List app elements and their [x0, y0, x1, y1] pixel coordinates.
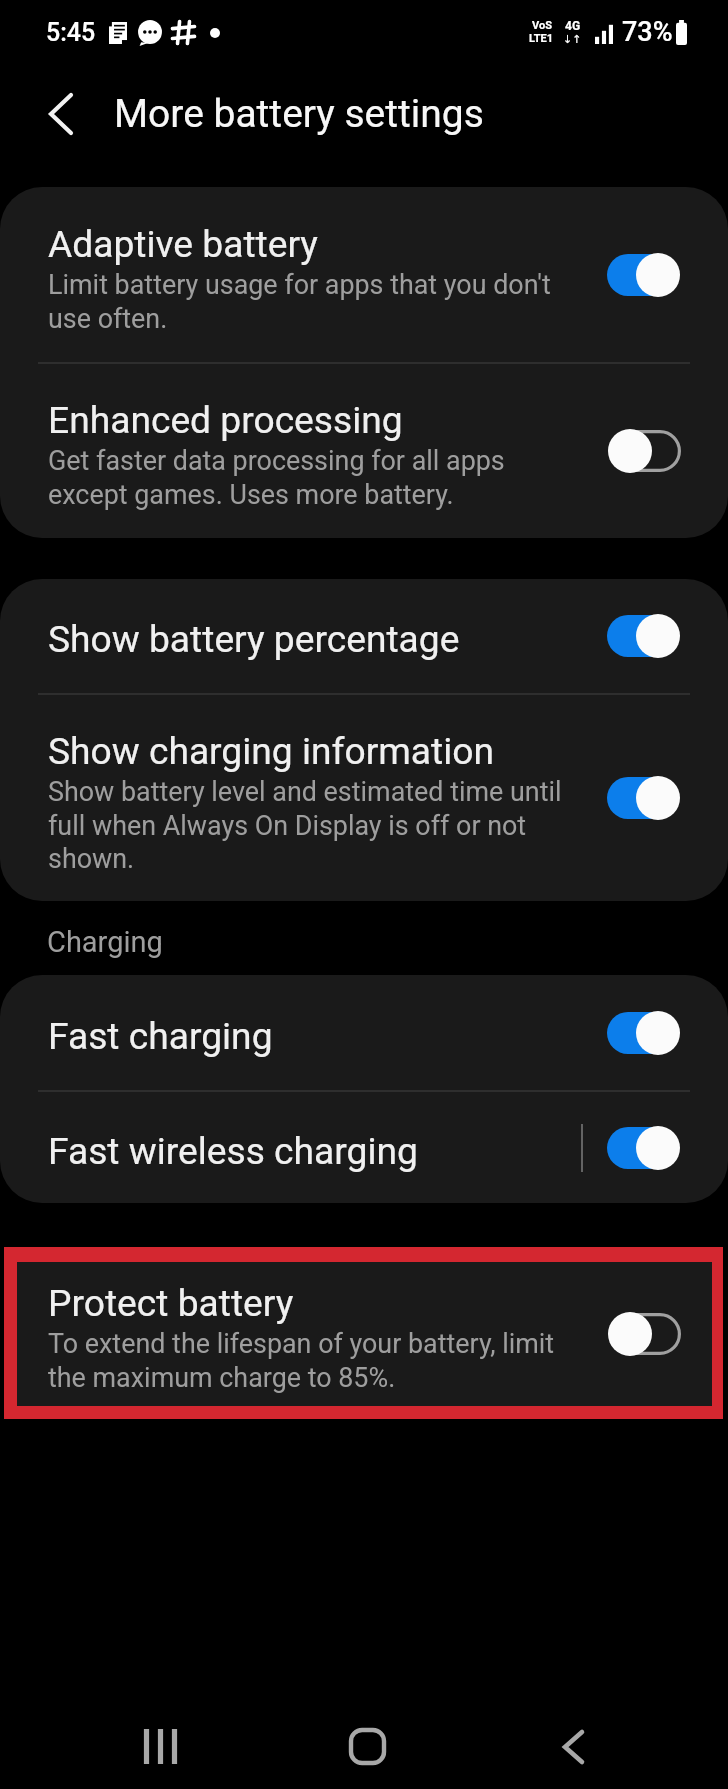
button[interactable]: Recent apps [100, 1704, 220, 1789]
button[interactable]: Protect battery [17, 1262, 712, 1406]
staticText: Limit battery usage for apps that you do… [48, 269, 551, 334]
other: Enhanced processing [607, 429, 681, 473]
button[interactable]: Adaptive battery [0, 187, 728, 362]
staticText: More battery settings [114, 91, 484, 137]
staticText: Adaptive battery [48, 222, 318, 266]
staticText: Enhanced processing [48, 398, 403, 442]
other: Fast wireless charging [607, 1126, 681, 1170]
staticText: 4G [565, 19, 581, 33]
button[interactable]: Fast wireless charging [0, 1092, 728, 1203]
staticText: Get faster data processing for all apps … [48, 445, 505, 510]
other: Adaptive battery [607, 253, 681, 297]
staticText: Charging [47, 925, 163, 959]
staticText: 73% [622, 16, 673, 48]
other: Show battery percentage [607, 614, 681, 658]
staticText: Show battery percentage [48, 617, 460, 661]
other: Show charging information [607, 776, 681, 820]
button[interactable]: Back [513, 1704, 633, 1789]
button[interactable]: Show charging information [0, 695, 728, 901]
button[interactable]: Fast charging [0, 975, 728, 1090]
button[interactable]: Back [21, 74, 101, 154]
button[interactable]: Enhanced processing [0, 364, 728, 538]
other: Protect battery [607, 1312, 681, 1356]
other: Fast charging [607, 1011, 681, 1055]
staticText: LTE1 [529, 32, 554, 45]
staticText: VoS [532, 19, 552, 32]
staticText: Fast wireless charging [48, 1129, 418, 1173]
button[interactable]: Show battery percentage [0, 579, 728, 693]
staticText: 5:45 [46, 18, 96, 47]
button[interactable]: Home [307, 1704, 427, 1789]
staticText: Fast charging [48, 1014, 273, 1058]
staticText: To extend the lifespan of your battery, … [48, 1328, 555, 1393]
staticText: Show battery level and estimated time un… [48, 776, 562, 874]
staticText: Protect battery [48, 1281, 294, 1325]
staticText: Show charging information [48, 729, 495, 773]
staticText: ↓↑ [563, 33, 582, 46]
